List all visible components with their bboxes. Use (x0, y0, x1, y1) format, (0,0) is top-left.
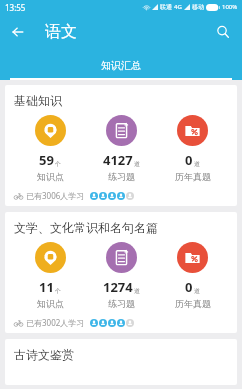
button[interactable]: Back (3, 17, 33, 47)
staticText: 13:55 (5, 2, 26, 13)
staticText: 0 (185, 278, 193, 296)
staticText: 知识汇总 (101, 59, 141, 72)
staticText: 道 (134, 287, 140, 295)
staticText: 历年真题 (175, 298, 211, 309)
staticText: 个 (55, 287, 61, 295)
staticText: 文学、文化常识和名句名篇 (14, 220, 158, 235)
button[interactable]: 历年真题 (177, 115, 208, 146)
staticText: 知识点 (37, 171, 64, 182)
staticText: 古诗文鉴赏 (14, 347, 74, 362)
staticText: 0 (185, 151, 193, 169)
staticText: 道 (194, 160, 200, 168)
staticText: 11 (39, 278, 54, 296)
button[interactable]: 知识点 (35, 115, 66, 146)
staticText: 4127 (103, 151, 133, 169)
staticText: 道 (194, 287, 200, 295)
button[interactable]: 历年真题 (177, 242, 208, 273)
button[interactable]: 知识汇总 (0, 50, 242, 80)
staticText: 知识点 (37, 298, 64, 309)
staticText: 1274 (103, 278, 133, 296)
staticText: 练习题 (108, 171, 135, 182)
staticText: 移动 (192, 3, 204, 11)
button[interactable]: Search (208, 17, 238, 47)
button[interactable]: 练习题 (106, 242, 137, 273)
staticText: 练习题 (108, 298, 135, 309)
staticText: 4G (174, 3, 182, 11)
button[interactable]: 古诗文鉴赏 (5, 339, 237, 385)
staticText: 联通 (160, 3, 172, 11)
staticText: 个 (55, 160, 61, 168)
staticText: 历年真题 (175, 171, 211, 182)
staticText: 语文 (45, 22, 77, 42)
staticText: 已有3006人学习 (26, 190, 85, 201)
staticText: 59 (39, 151, 54, 169)
button[interactable]: 基础知识 (5, 85, 237, 206)
staticText: 已有3002人学习 (26, 317, 85, 328)
staticText: 基础知识 (14, 93, 62, 108)
staticText: 道 (134, 160, 140, 168)
button[interactable]: 练习题 (106, 115, 137, 146)
button[interactable]: 文学、文化常识和名句名篇 (5, 212, 237, 333)
staticText: 100% (222, 3, 238, 11)
button[interactable]: 知识点 (35, 242, 66, 273)
